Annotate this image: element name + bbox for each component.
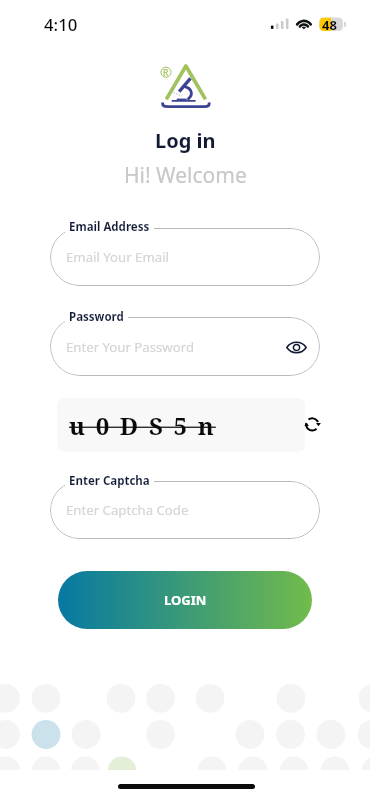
button[interactable]: Show password [284, 335, 308, 359]
button[interactable]: Email Your Email [50, 228, 320, 286]
staticText: Email Address [69, 219, 150, 234]
button[interactable]: LOGIN [58, 571, 312, 629]
staticText: Password [69, 309, 124, 324]
staticText: Hi! Welcome [124, 161, 247, 190]
staticText: u 0 D S 5 n [69, 409, 216, 442]
button[interactable]: Refresh captcha [302, 414, 322, 434]
staticText: R [163, 67, 169, 79]
staticText: 48 [322, 16, 337, 34]
staticText: LOGIN [164, 591, 207, 609]
staticText: Enter Captcha Code [66, 501, 189, 519]
staticText: Log in [155, 127, 216, 154]
staticText: 4:10 [44, 13, 78, 36]
staticText: Enter Captcha [69, 473, 150, 488]
staticText: Enter Your Password [66, 338, 195, 356]
button[interactable]: Enter Your Password [50, 317, 320, 376]
staticText: Email Your Email [66, 248, 169, 266]
button[interactable]: Enter Captcha Code [50, 481, 320, 539]
